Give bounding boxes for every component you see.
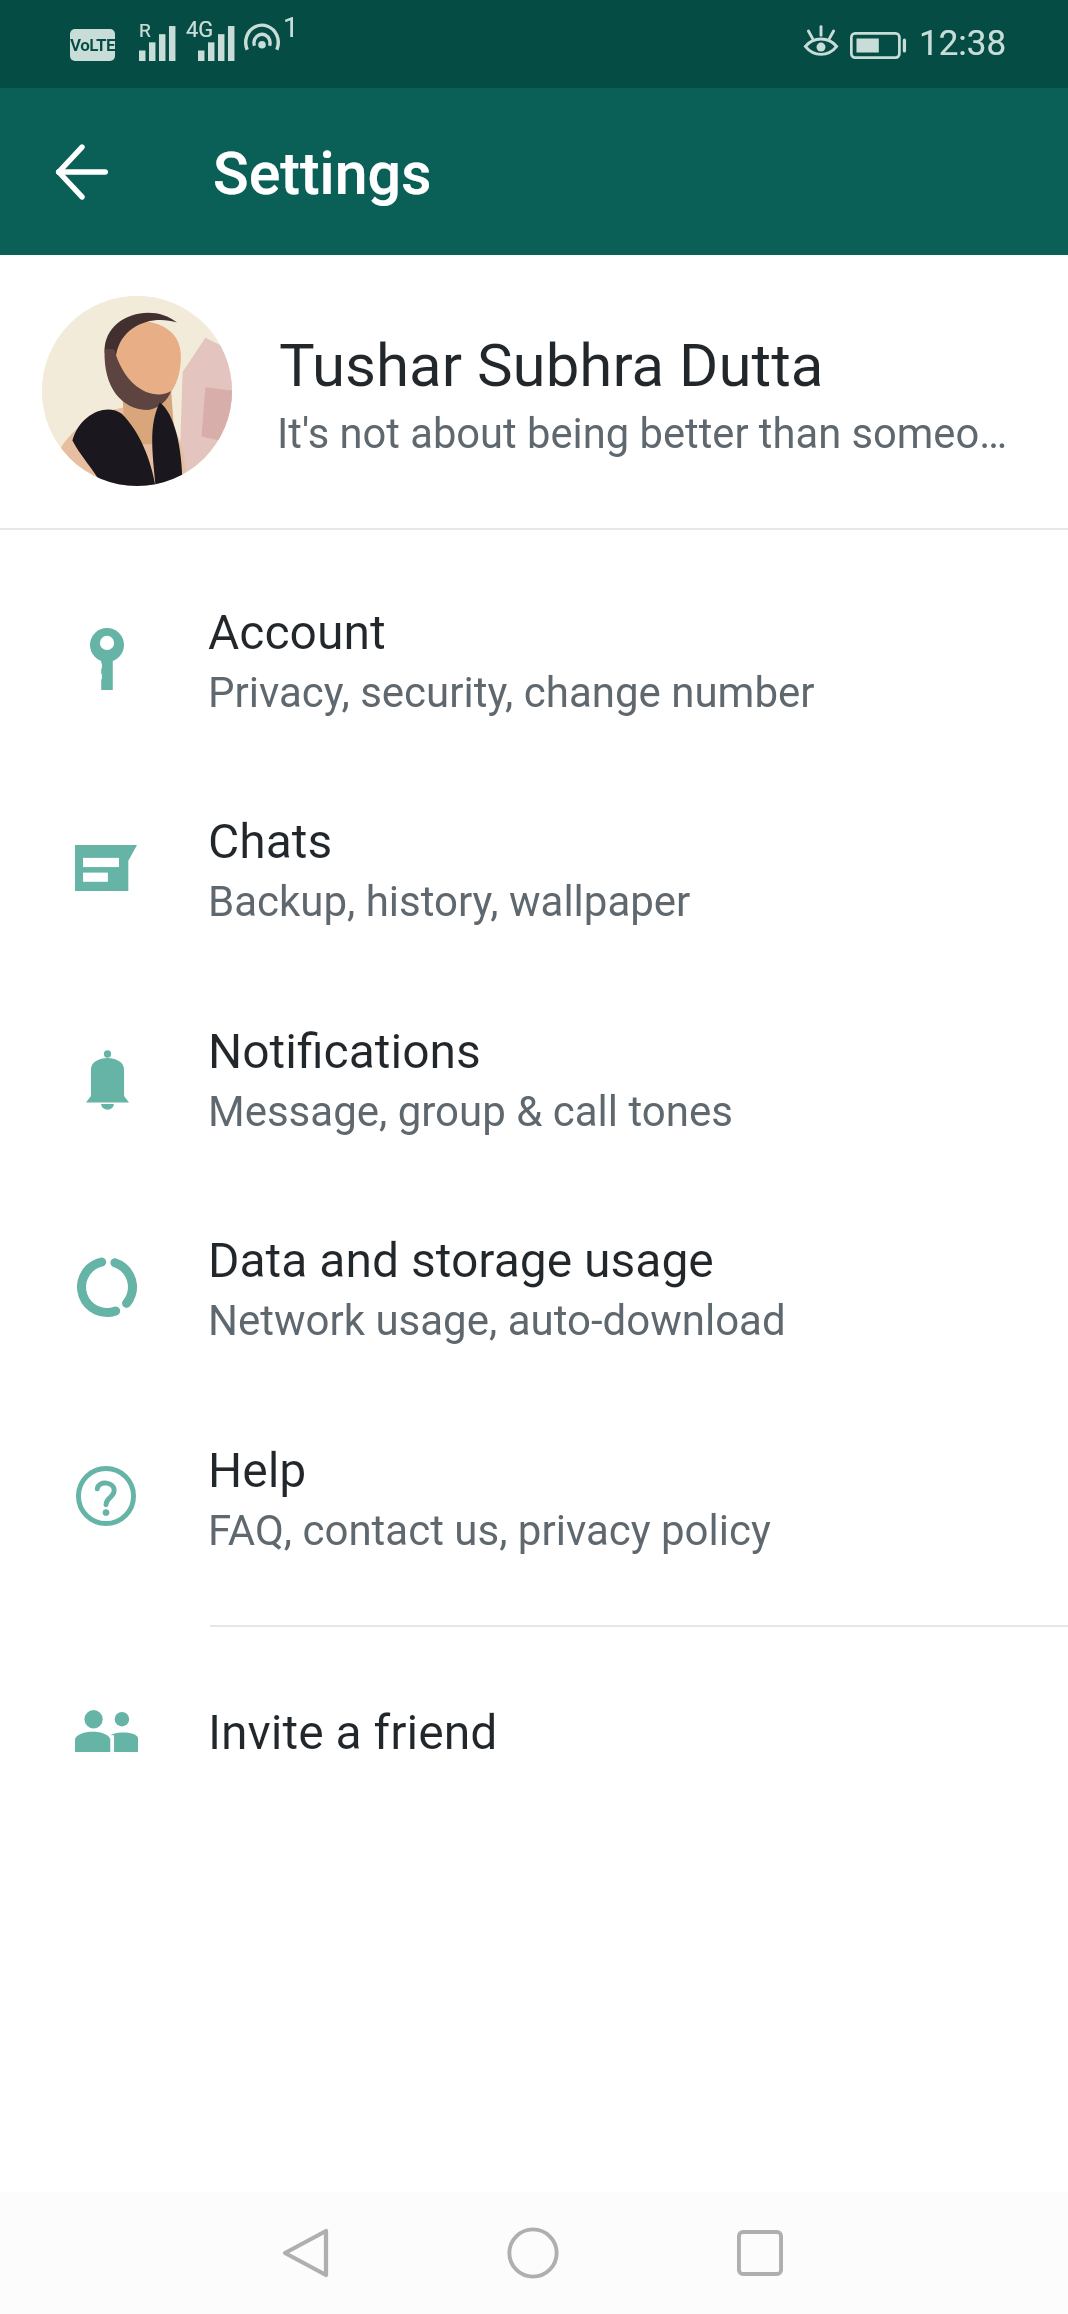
button[interactable]: Home [453, 2192, 613, 2314]
staticText: Data and storage usage [208, 1232, 714, 1288]
staticText: Privacy, security, change number [208, 668, 815, 717]
button[interactable]: Tushar Subhra Dutta [0, 255, 1068, 528]
staticText: Tushar Subhra Dutta [279, 330, 824, 400]
button[interactable]: Data and storage usage [0, 1187, 1068, 1397]
staticText: Invite a friend [208, 1704, 498, 1760]
staticText: Chats [208, 813, 333, 869]
staticText: 12:38 [919, 23, 1007, 64]
button[interactable]: Back [225, 2192, 385, 2314]
staticText: VoLTE [70, 35, 115, 55]
button[interactable]: Chats [0, 768, 1068, 978]
button[interactable]: Help [0, 1397, 1068, 1607]
button[interactable]: Invite a friend [0, 1657, 1068, 1807]
staticText: 1 [283, 11, 299, 44]
staticText: 4G [186, 17, 214, 43]
staticText: Backup, history, wallpaper [208, 877, 691, 926]
button[interactable]: Account [0, 559, 1068, 769]
staticText: It's not about being better than someo… [277, 409, 1008, 458]
staticText: Account [208, 604, 386, 660]
staticText: Settings [213, 139, 432, 208]
button[interactable]: Recent apps [680, 2192, 840, 2314]
staticText: Help [208, 1442, 307, 1498]
staticText: R [139, 19, 151, 41]
staticText: Notifications [208, 1023, 481, 1079]
staticText: Network usage, auto-download [208, 1296, 786, 1345]
staticText: Message, group & call tones [208, 1087, 733, 1136]
staticText: FAQ, contact us, privacy policy [208, 1506, 771, 1555]
button[interactable]: Back [30, 120, 134, 224]
button[interactable]: Notifications [0, 978, 1068, 1188]
